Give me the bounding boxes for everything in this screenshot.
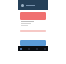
other: Menu <box>21 4 24 7</box>
button[interactable]: Menu <box>18 0 48 10</box>
button[interactable] <box>20 12 46 20</box>
button[interactable] <box>20 40 46 46</box>
